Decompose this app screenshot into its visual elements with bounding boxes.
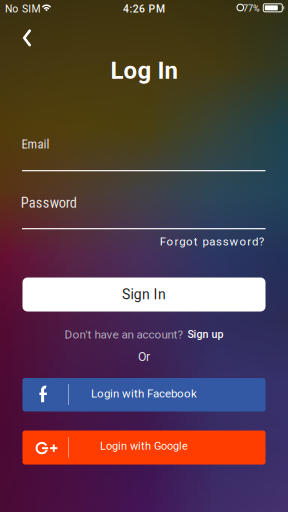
staticText: Sign up	[187, 328, 223, 341]
staticText: Log In	[110, 56, 177, 85]
staticText: Login with Facebook	[91, 387, 197, 400]
staticText: 77%	[243, 3, 260, 14]
button[interactable]: Login with Google	[22, 430, 265, 464]
button[interactable]: Login with Facebook	[22, 378, 265, 411]
staticText: Email	[21, 136, 49, 151]
staticText: No SIM	[5, 3, 40, 15]
staticText: Or	[138, 349, 150, 364]
staticText: Sign In	[122, 286, 166, 303]
staticText: Don't have an account?	[64, 327, 183, 341]
button[interactable]: Password	[22, 194, 265, 229]
staticText: Login with Google	[100, 440, 188, 452]
button[interactable]: Forgot password?	[160, 235, 264, 248]
staticText: Password	[21, 194, 77, 211]
button[interactable]	[16, 22, 38, 53]
staticText: 4:26 PM	[123, 3, 165, 15]
staticText: Forgot password?	[160, 235, 264, 248]
button[interactable]: Sign up	[187, 328, 223, 341]
button[interactable]: Email	[22, 136, 265, 171]
button[interactable]: Sign In	[22, 277, 265, 311]
